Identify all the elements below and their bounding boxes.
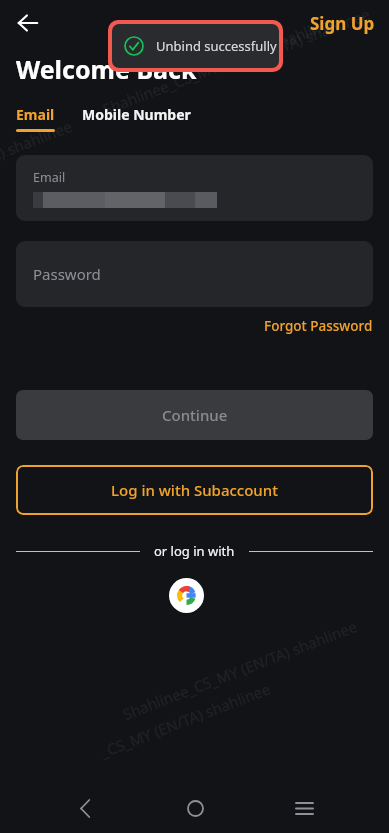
button[interactable]: Home xyxy=(171,784,219,832)
button[interactable]: Email xyxy=(16,105,55,132)
staticText: Email xyxy=(33,169,66,186)
staticText: Password xyxy=(33,264,101,284)
staticText: Sign Up xyxy=(310,12,375,35)
staticText: Unbind successfully xyxy=(156,37,277,55)
button[interactable]: Back xyxy=(8,3,48,43)
button[interactable]: Continue xyxy=(16,390,373,440)
button[interactable]: Password xyxy=(16,241,373,307)
button[interactable]: Log in with Subaccount xyxy=(16,465,373,515)
button[interactable]: Back xyxy=(61,784,109,832)
staticText: (EN/TA) shahlinee xyxy=(250,3,373,66)
staticText: Shahlinee_CS_MY (EN/TA) shahlinee xyxy=(0,116,75,224)
button[interactable]: Sign Up xyxy=(310,12,375,35)
staticText: or log in with xyxy=(154,542,235,560)
staticText: Welcome Back xyxy=(16,52,197,86)
staticText: Shahlinee_CS_MY (EN/TA) shahlinee xyxy=(100,11,340,119)
staticText: Forgot Password xyxy=(264,317,373,335)
button[interactable]: Log in with Google xyxy=(169,578,204,613)
button[interactable]: Mobile Number xyxy=(82,105,191,124)
staticText: Continue xyxy=(162,405,228,425)
button[interactable]: Forgot Password xyxy=(264,317,373,335)
staticText: Log in with Subaccount xyxy=(111,480,278,500)
button[interactable]: Email xyxy=(16,155,373,221)
button[interactable]: Recent apps xyxy=(280,784,328,832)
staticText: Mobile Number xyxy=(82,105,191,124)
staticText: Email xyxy=(16,105,55,124)
